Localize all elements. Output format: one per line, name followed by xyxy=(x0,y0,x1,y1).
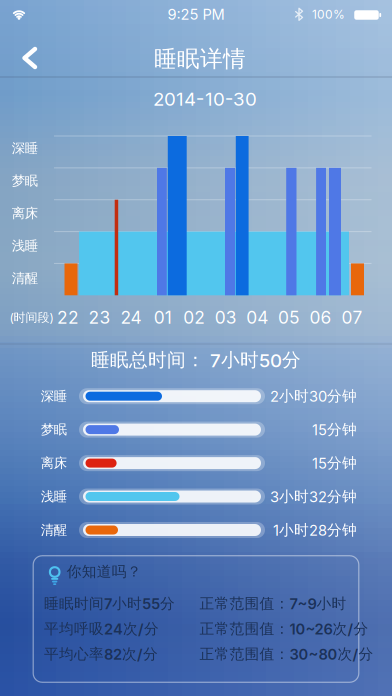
staticText: 清醒 xyxy=(12,270,38,287)
staticText: 22 xyxy=(57,307,79,328)
staticText: 100% xyxy=(312,7,345,22)
staticText: 浅睡 xyxy=(12,238,38,254)
staticText: 浅睡 xyxy=(41,488,67,505)
staticText: (时间段) xyxy=(10,310,54,325)
staticText: 07 xyxy=(341,307,362,328)
staticText: 睡眠总时间： 7小时50分 xyxy=(91,348,301,371)
staticText: 15分钟 xyxy=(312,421,357,439)
staticText: 02 xyxy=(183,307,205,328)
staticText: 正常范围值：7~9小时 xyxy=(199,595,346,613)
staticText: 梦眠 xyxy=(12,173,38,189)
button[interactable]: Back xyxy=(11,36,49,79)
staticText: 睡眠详情 xyxy=(154,45,246,73)
staticText: 23 xyxy=(89,307,111,328)
staticText: 梦眠 xyxy=(41,421,67,438)
staticText: 2小时30分钟 xyxy=(270,387,357,405)
staticText: 正常范围值：30~80次/分 xyxy=(199,645,373,663)
staticText: 04 xyxy=(246,307,268,328)
staticText: 离床 xyxy=(12,205,38,222)
staticText: 1小时28分钟 xyxy=(273,521,357,539)
staticText: 深睡 xyxy=(12,140,38,157)
staticText: 3小时32分钟 xyxy=(270,487,357,505)
staticText: 正常范围值：10~26次/分 xyxy=(199,620,368,638)
staticText: 2014-10-30 xyxy=(153,88,257,110)
staticText: 清醒 xyxy=(41,522,67,538)
staticText: 06 xyxy=(309,307,331,328)
staticText: 05 xyxy=(278,307,300,328)
staticText: 你知道吗？ xyxy=(67,562,142,580)
staticText: 睡眠时间7小时55分 xyxy=(44,595,175,613)
staticText: 平均心率82次/分 xyxy=(44,645,158,663)
staticText: 24 xyxy=(121,307,142,328)
staticText: 15分钟 xyxy=(312,454,357,472)
staticText: 03 xyxy=(215,307,237,328)
staticText: 深睡 xyxy=(41,388,67,404)
staticText: 离床 xyxy=(41,455,67,471)
staticText: 9:25 PM xyxy=(167,6,224,23)
staticText: 01 xyxy=(154,307,172,328)
staticText: 平均呼吸24次/分 xyxy=(44,620,159,638)
